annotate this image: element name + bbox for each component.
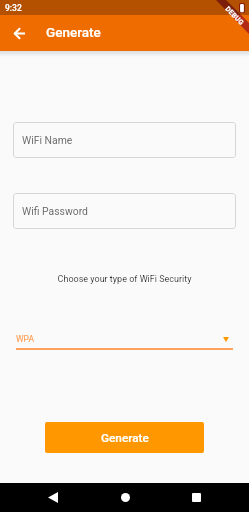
staticText: DEBUG bbox=[223, 5, 245, 27]
staticText: WPA bbox=[16, 334, 35, 344]
button[interactable]: Wifi Password bbox=[13, 193, 236, 229]
button[interactable]: Back bbox=[33, 483, 73, 512]
staticText: Generate bbox=[46, 24, 101, 40]
staticText: Choose your type of WiFi Security bbox=[0, 274, 249, 285]
button[interactable]: Navigate back bbox=[8, 22, 30, 44]
button[interactable]: WPA bbox=[16, 331, 233, 350]
button[interactable]: Generate bbox=[45, 422, 204, 453]
button[interactable]: WiFi Name bbox=[13, 122, 236, 158]
button[interactable]: Recent apps bbox=[176, 483, 216, 512]
button[interactable]: Home bbox=[105, 483, 145, 512]
staticText: Generate bbox=[101, 431, 149, 445]
staticText: WiFi Name bbox=[22, 134, 73, 146]
staticText: 9:32 bbox=[5, 3, 22, 13]
staticText: Wifi Password bbox=[22, 205, 88, 217]
